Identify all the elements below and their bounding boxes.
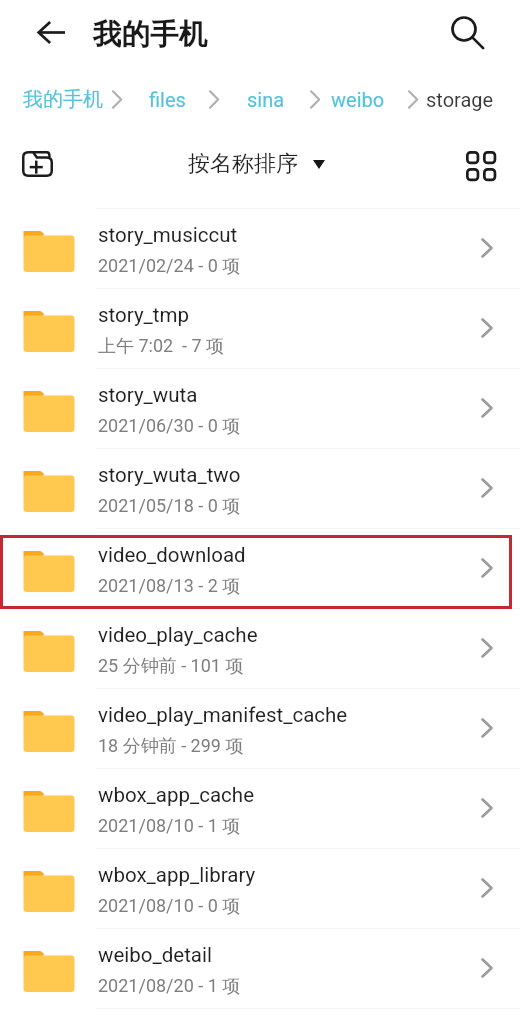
staticText: 2021/06/30 - 0 项 <box>98 415 241 438</box>
staticText: story_wuta <box>98 383 198 407</box>
button[interactable]: files <box>149 86 186 113</box>
staticText: weibo <box>331 88 385 111</box>
staticText: 我的手机 <box>93 17 207 53</box>
button[interactable]: storage <box>426 86 494 113</box>
button[interactable]: story_tmp <box>0 289 520 369</box>
button[interactable]: New folder <box>11 138 63 190</box>
button[interactable]: video_play_manifest_cache <box>0 689 520 769</box>
button[interactable]: weibo <box>331 86 385 113</box>
button[interactable]: Grid view <box>452 138 504 190</box>
button[interactable]: video_play_cache <box>0 609 520 689</box>
staticText: wbox_app_cache <box>98 783 255 807</box>
staticText: 按名称排序 <box>188 150 298 178</box>
staticText: wbox_app_library <box>98 863 256 887</box>
staticText: 2021/08/10 - 0 项 <box>98 895 241 918</box>
button[interactable]: Back <box>24 5 78 59</box>
staticText: video_play_manifest_cache <box>98 703 348 727</box>
staticText: 上午 7:02 - 7 项 <box>98 335 225 358</box>
staticText: 2021/02/24 - 0 项 <box>98 255 241 278</box>
button[interactable]: weibo_detail <box>0 929 520 1009</box>
button[interactable]: wbox_app_cache <box>0 769 520 849</box>
button[interactable]: story_wuta_two <box>0 449 520 529</box>
button[interactable]: video_download <box>0 529 520 609</box>
staticText: 2021/08/13 - 2 项 <box>98 575 241 598</box>
button[interactable]: 我的手机 <box>23 86 103 113</box>
staticText: 2021/08/10 - 1 项 <box>98 815 241 838</box>
staticText: 25 分钟前 - 101 项 <box>98 655 244 678</box>
staticText: story_wuta_two <box>98 463 241 487</box>
staticText: 2021/08/20 - 1 项 <box>98 975 241 998</box>
staticText: storage <box>426 88 494 111</box>
button[interactable]: wbox_app_library <box>0 849 520 929</box>
staticText: video_play_cache <box>98 623 258 647</box>
staticText: story_musiccut <box>98 223 238 247</box>
staticText: files <box>149 88 186 111</box>
staticText: 18 分钟前 - 299 项 <box>98 735 244 758</box>
button[interactable]: story_musiccut <box>0 209 520 289</box>
button[interactable]: 按名称排序 <box>188 150 325 178</box>
staticText: 我的手机 <box>23 87 103 112</box>
button[interactable]: story_wuta <box>0 369 520 449</box>
staticText: video_download <box>98 543 246 567</box>
staticText: 2021/05/18 - 0 项 <box>98 495 241 518</box>
button[interactable]: Search <box>438 3 490 55</box>
staticText: weibo_detail <box>98 943 212 967</box>
button[interactable]: sina <box>247 86 285 113</box>
staticText: sina <box>247 88 285 111</box>
staticText: story_tmp <box>98 303 190 327</box>
